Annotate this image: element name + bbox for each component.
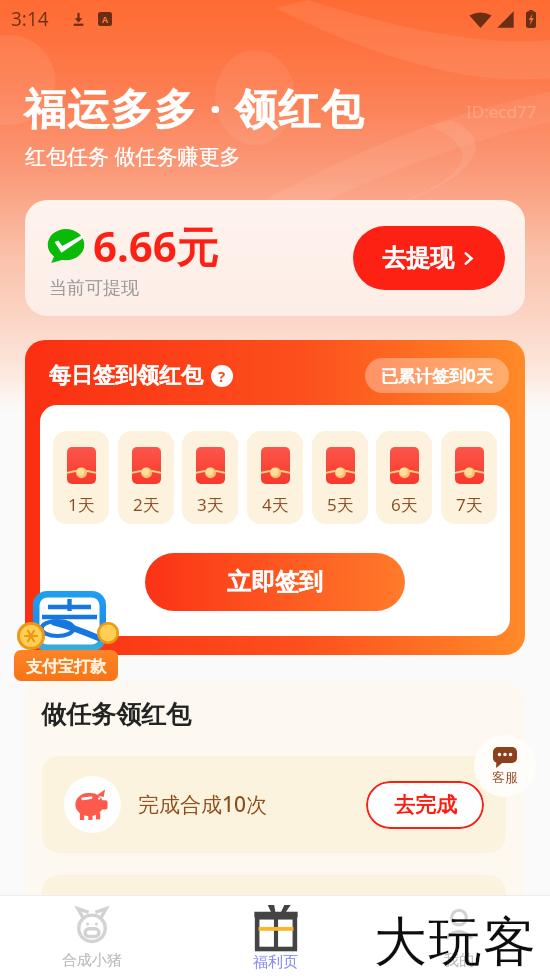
button[interactable]: 规则说明: [211, 365, 233, 387]
button[interactable]: 4天: [247, 431, 303, 524]
staticText: 做任务领红包: [41, 699, 191, 730]
staticText: 每日签到领红包: [49, 362, 203, 390]
staticText: 福利页: [253, 953, 298, 972]
staticText: 4天: [262, 493, 289, 516]
staticText: 支付宝打款: [26, 657, 106, 677]
staticText: 合成小猪: [62, 951, 122, 970]
staticText: 完成合成10次: [138, 790, 268, 819]
button[interactable]: 已累计签到0天: [365, 358, 509, 393]
staticText: 2天: [133, 493, 160, 516]
staticText: 5天: [327, 493, 354, 516]
staticText: 6天: [391, 493, 418, 516]
staticText: ID:ecd77: [466, 100, 537, 123]
staticText: 已累计签到0天: [381, 364, 493, 387]
staticText: 7天: [456, 493, 483, 516]
staticText: 立即签到: [227, 567, 323, 597]
staticText: A: [102, 13, 109, 25]
staticText: 1天: [68, 493, 95, 516]
staticText: 6.66元: [93, 217, 219, 274]
staticText: ?: [218, 366, 226, 386]
button[interactable]: 去完成: [366, 781, 484, 829]
button[interactable]: 7天: [441, 431, 497, 524]
button[interactable]: 福利页: [184, 896, 367, 979]
button[interactable]: 6天: [376, 431, 432, 524]
button[interactable]: 完成合成10次: [42, 756, 506, 853]
staticText: 3:14: [11, 6, 49, 32]
staticText: 我的: [444, 951, 474, 970]
staticText: 大玩客: [374, 909, 538, 976]
button[interactable]: 客服: [474, 735, 536, 797]
staticText: 福运多多 · 领红包: [24, 79, 365, 136]
staticText: 去提现: [382, 243, 454, 273]
button[interactable]: 1天: [53, 431, 109, 524]
button[interactable]: 我的: [367, 896, 550, 979]
staticText: 红包任务 做任务赚更多: [25, 142, 241, 171]
staticText: 去完成: [394, 792, 457, 818]
staticText: 当前可提现: [49, 277, 139, 300]
button[interactable]: 合成小猪: [0, 896, 184, 979]
button[interactable]: 立即签到: [145, 553, 405, 611]
button[interactable]: 3天: [182, 431, 238, 524]
button[interactable]: 去提现: [353, 226, 505, 290]
staticText: 3天: [197, 493, 224, 516]
staticText: 客服: [492, 769, 518, 785]
button[interactable]: 2天: [118, 431, 174, 524]
button[interactable]: 5天: [312, 431, 368, 524]
